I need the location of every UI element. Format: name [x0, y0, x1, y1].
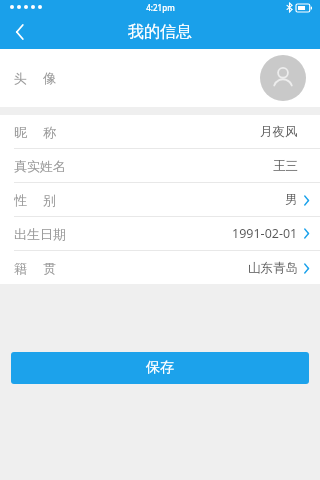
- staticText: 月夜风: [260, 124, 298, 140]
- button[interactable]: Back: [0, 14, 40, 49]
- staticText: 别: [43, 192, 56, 208]
- staticText: 山东青岛: [248, 260, 298, 276]
- staticText: 昵: [14, 124, 27, 140]
- staticText: 真实姓名: [14, 158, 66, 174]
- button[interactable]: 头: [0, 49, 320, 107]
- button[interactable]: 昵: [0, 115, 320, 149]
- staticText: 贯: [43, 260, 56, 276]
- button[interactable]: 保存: [11, 352, 309, 384]
- staticText: 1991-02-01: [232, 225, 298, 242]
- button[interactable]: 性: [0, 183, 320, 217]
- staticText: 保存: [146, 359, 174, 377]
- staticText: 籍: [14, 260, 27, 276]
- staticText: 像: [43, 70, 56, 86]
- staticText: 王三: [273, 158, 298, 174]
- staticText: 4:21pm: [146, 2, 175, 13]
- staticText: 男: [285, 192, 298, 208]
- button[interactable]: 真实姓名: [0, 149, 320, 183]
- button[interactable]: 籍: [0, 251, 320, 284]
- staticText: 性: [14, 192, 27, 208]
- staticText: 我的信息: [128, 22, 192, 42]
- staticText: 头: [14, 70, 27, 86]
- staticText: 出生日期: [14, 226, 66, 242]
- button[interactable]: 出生日期: [0, 217, 320, 251]
- staticText: 称: [43, 124, 56, 140]
